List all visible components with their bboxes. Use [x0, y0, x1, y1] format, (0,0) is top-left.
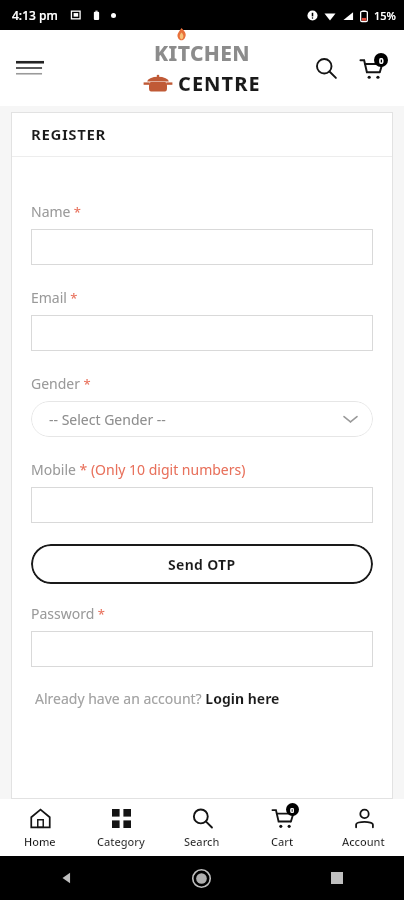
button[interactable]: Send OTP	[31, 544, 373, 584]
button[interactable]	[31, 315, 373, 351]
button[interactable]	[31, 229, 373, 265]
button[interactable]: Search	[308, 50, 344, 86]
button[interactable]: Recent apps	[269, 856, 404, 900]
button[interactable]: Category	[80, 799, 161, 856]
staticText: Password *	[31, 604, 105, 623]
button[interactable]: Cart	[352, 49, 390, 87]
staticText: Already have an account? Login here	[35, 689, 280, 708]
button[interactable]: Menu	[8, 46, 52, 90]
staticText: CENTRE	[178, 70, 261, 97]
staticText: Search	[184, 834, 220, 849]
staticText: 4:13 pm	[12, 7, 58, 23]
button[interactable]: -- Select Gender --	[31, 401, 373, 437]
staticText: Cart	[271, 834, 294, 849]
staticText: Gender *	[31, 374, 91, 393]
button[interactable]: Already have an account? Login here	[31, 689, 373, 708]
button[interactable]: 0	[242, 799, 323, 856]
staticText: REGISTER	[31, 124, 106, 144]
staticText: Mobile * (Only 10 digit numbers)	[31, 460, 246, 479]
staticText: Email *	[31, 288, 78, 307]
staticText: Home	[24, 834, 56, 849]
button[interactable]: Back	[0, 856, 134, 900]
staticText: 0	[290, 805, 295, 815]
staticText: 15%	[374, 8, 396, 23]
button[interactable]: Home	[134, 856, 269, 900]
staticText: 0	[379, 55, 384, 66]
button[interactable]: Account	[323, 799, 404, 856]
staticText: Category	[97, 834, 145, 849]
staticText: KITCHEN	[154, 39, 251, 68]
button[interactable]	[31, 631, 373, 667]
staticText: Name *	[31, 202, 82, 221]
staticText: -- Select Gender --	[49, 410, 166, 429]
staticText: Account	[342, 834, 385, 849]
button[interactable]: Home	[0, 799, 80, 856]
staticText: Send OTP	[168, 555, 236, 574]
button[interactable]: Search	[161, 799, 242, 856]
button[interactable]	[31, 487, 373, 523]
